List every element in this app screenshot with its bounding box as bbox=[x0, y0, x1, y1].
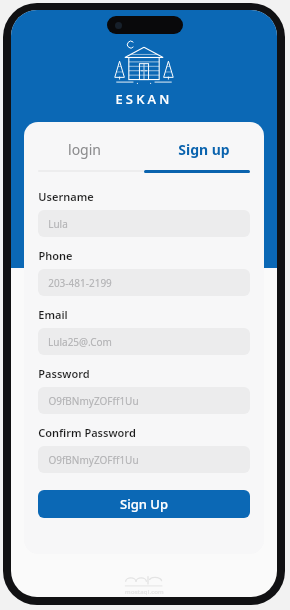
staticText: Confirm Password bbox=[38, 425, 136, 440]
staticText: login bbox=[68, 140, 101, 159]
staticText: Password bbox=[38, 366, 90, 381]
staticText: Lula25@.Com bbox=[48, 335, 112, 349]
button[interactable]: O9fBNmyZOFff1Uu bbox=[38, 387, 250, 414]
button[interactable]: Lula25@.Com bbox=[38, 328, 250, 355]
staticText: Lula bbox=[48, 217, 68, 231]
button[interactable]: Sign Up bbox=[38, 490, 250, 518]
staticText: Sign Up bbox=[120, 495, 168, 513]
staticText: Sign up bbox=[178, 140, 230, 159]
staticText: O9fBNmyZOFff1Uu bbox=[48, 394, 139, 408]
button[interactable]: Sign up bbox=[144, 134, 264, 164]
staticText: Username bbox=[38, 189, 94, 204]
button[interactable]: O9fBNmyZOFff1Uu bbox=[38, 446, 250, 473]
staticText: ESKAN bbox=[115, 90, 173, 108]
button[interactable]: Lula bbox=[38, 210, 250, 237]
staticText: 203-481-2199 bbox=[48, 276, 112, 290]
staticText: Phone bbox=[38, 248, 73, 263]
staticText: O9fBNmyZOFff1Uu bbox=[48, 453, 139, 467]
button[interactable]: login bbox=[24, 134, 144, 164]
staticText: Email bbox=[38, 307, 68, 322]
staticText: mostaql.com bbox=[125, 588, 164, 596]
button[interactable]: 203-481-2199 bbox=[38, 269, 250, 296]
